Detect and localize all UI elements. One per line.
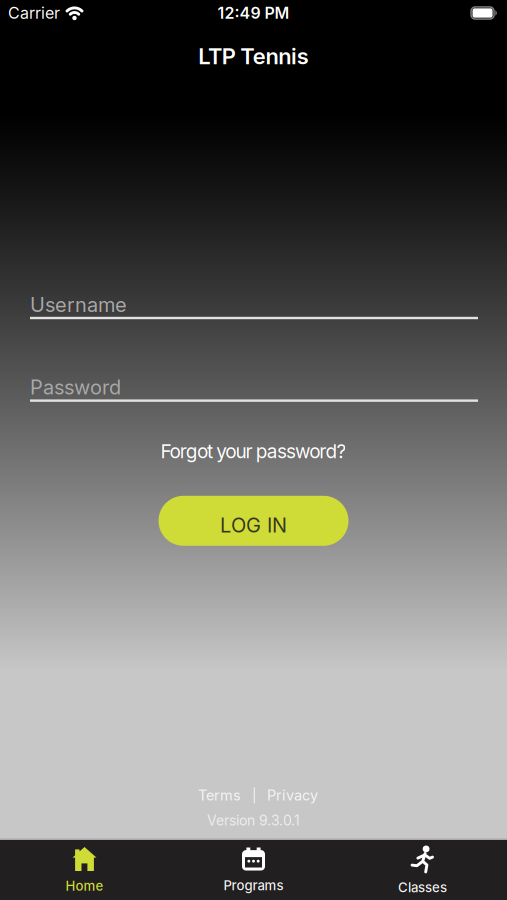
staticText: LOG IN [220,513,287,537]
staticText: Programs [223,877,283,893]
staticText: 12:49 PM [217,3,289,23]
button[interactable]: Terms [198,786,241,804]
button[interactable]: Programs [169,847,338,893]
button[interactable]: Classes [338,845,507,895]
staticText: Terms [198,786,241,804]
button[interactable]: LOG IN [158,496,348,546]
button[interactable]: Privacy [267,786,318,804]
staticText: Username [30,293,127,317]
staticText: Forgot your password? [160,440,346,463]
staticText: | [252,787,256,803]
staticText: Password [30,375,121,399]
staticText: Privacy [267,786,318,804]
staticText: Classes [398,879,447,895]
button[interactable]: Home [0,847,169,894]
button[interactable]: Password [30,375,478,402]
button[interactable]: Forgot your password? [160,440,346,463]
button[interactable]: Username [30,293,478,319]
staticText: Home [65,878,103,894]
staticText: Version 9.3.0.1 [207,812,300,829]
staticText: Carrier [8,3,60,23]
staticText: LTP Tennis [198,43,309,70]
